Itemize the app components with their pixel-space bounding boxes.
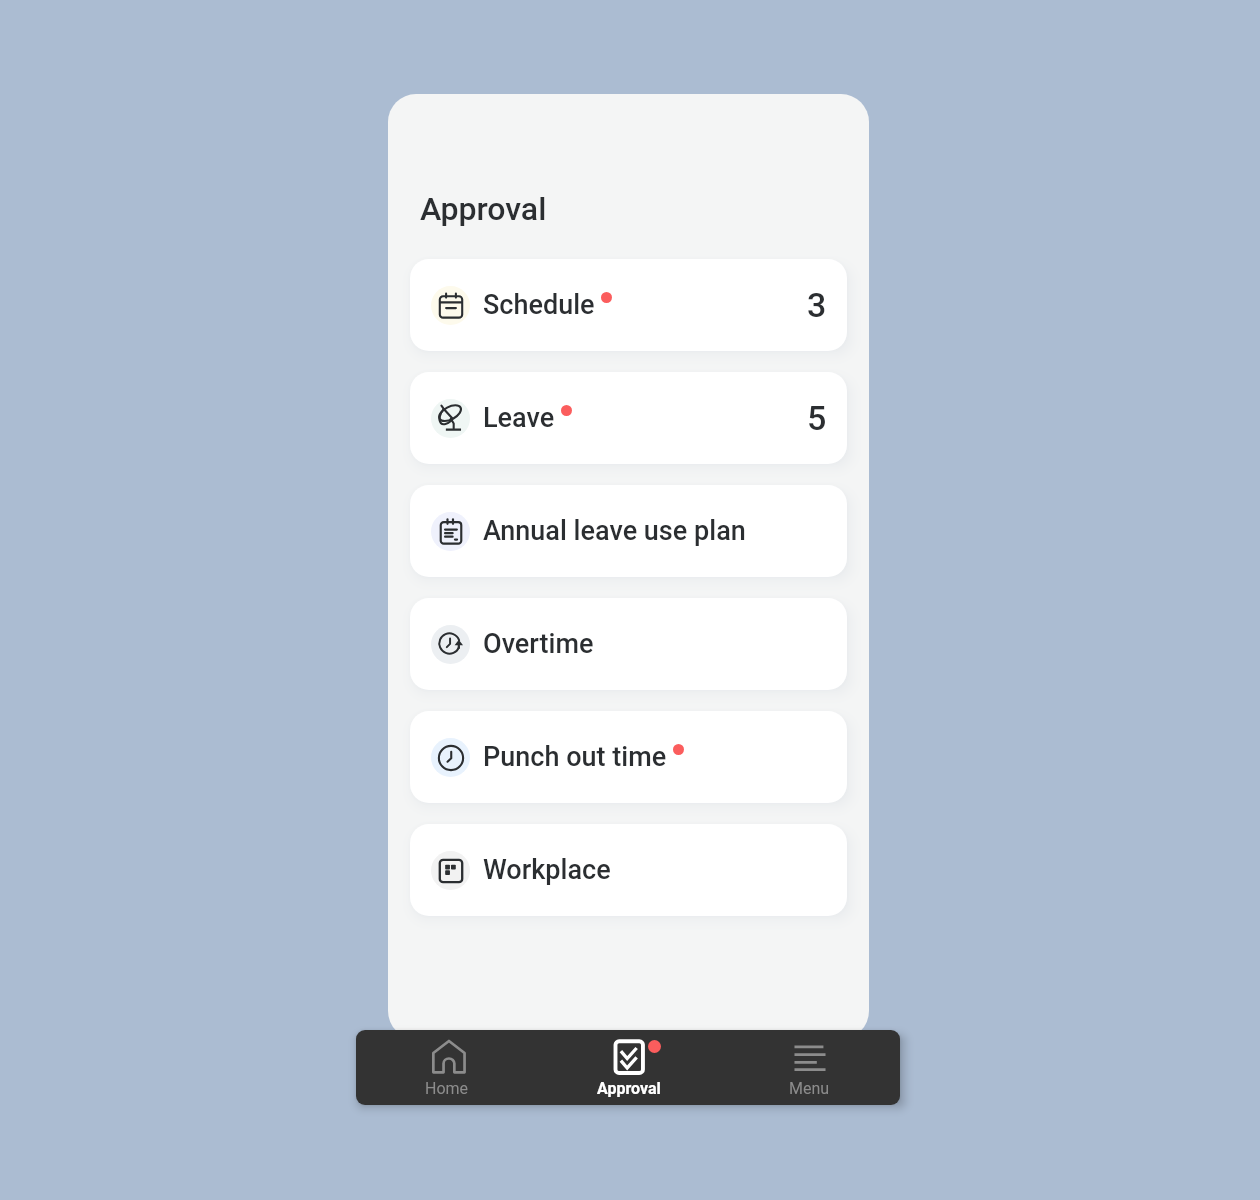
- staticText: Overtime: [483, 628, 594, 660]
- button[interactable]: Schedule: [410, 259, 847, 351]
- staticText: Punch out time: [483, 741, 667, 773]
- button[interactable]: Home: [356, 1030, 538, 1105]
- staticText: Approval: [597, 1079, 661, 1098]
- staticText: Leave: [483, 402, 555, 434]
- staticText: Home: [425, 1079, 469, 1098]
- button[interactable]: Overtime: [410, 598, 847, 690]
- button[interactable]: Workplace: [410, 824, 847, 916]
- staticText: Approval: [420, 190, 547, 228]
- staticText: Annual leave use plan: [483, 515, 746, 547]
- button[interactable]: Punch out time: [410, 711, 847, 803]
- staticText: 5: [807, 398, 827, 438]
- button[interactable]: Menu: [719, 1030, 900, 1105]
- staticText: Workplace: [483, 854, 611, 886]
- staticText: Schedule: [483, 289, 595, 321]
- staticText: 3: [807, 285, 827, 325]
- button[interactable]: Approval: [538, 1030, 719, 1105]
- button[interactable]: Annual leave use plan: [410, 485, 847, 577]
- button[interactable]: Leave: [410, 372, 847, 464]
- staticText: Menu: [789, 1079, 830, 1098]
